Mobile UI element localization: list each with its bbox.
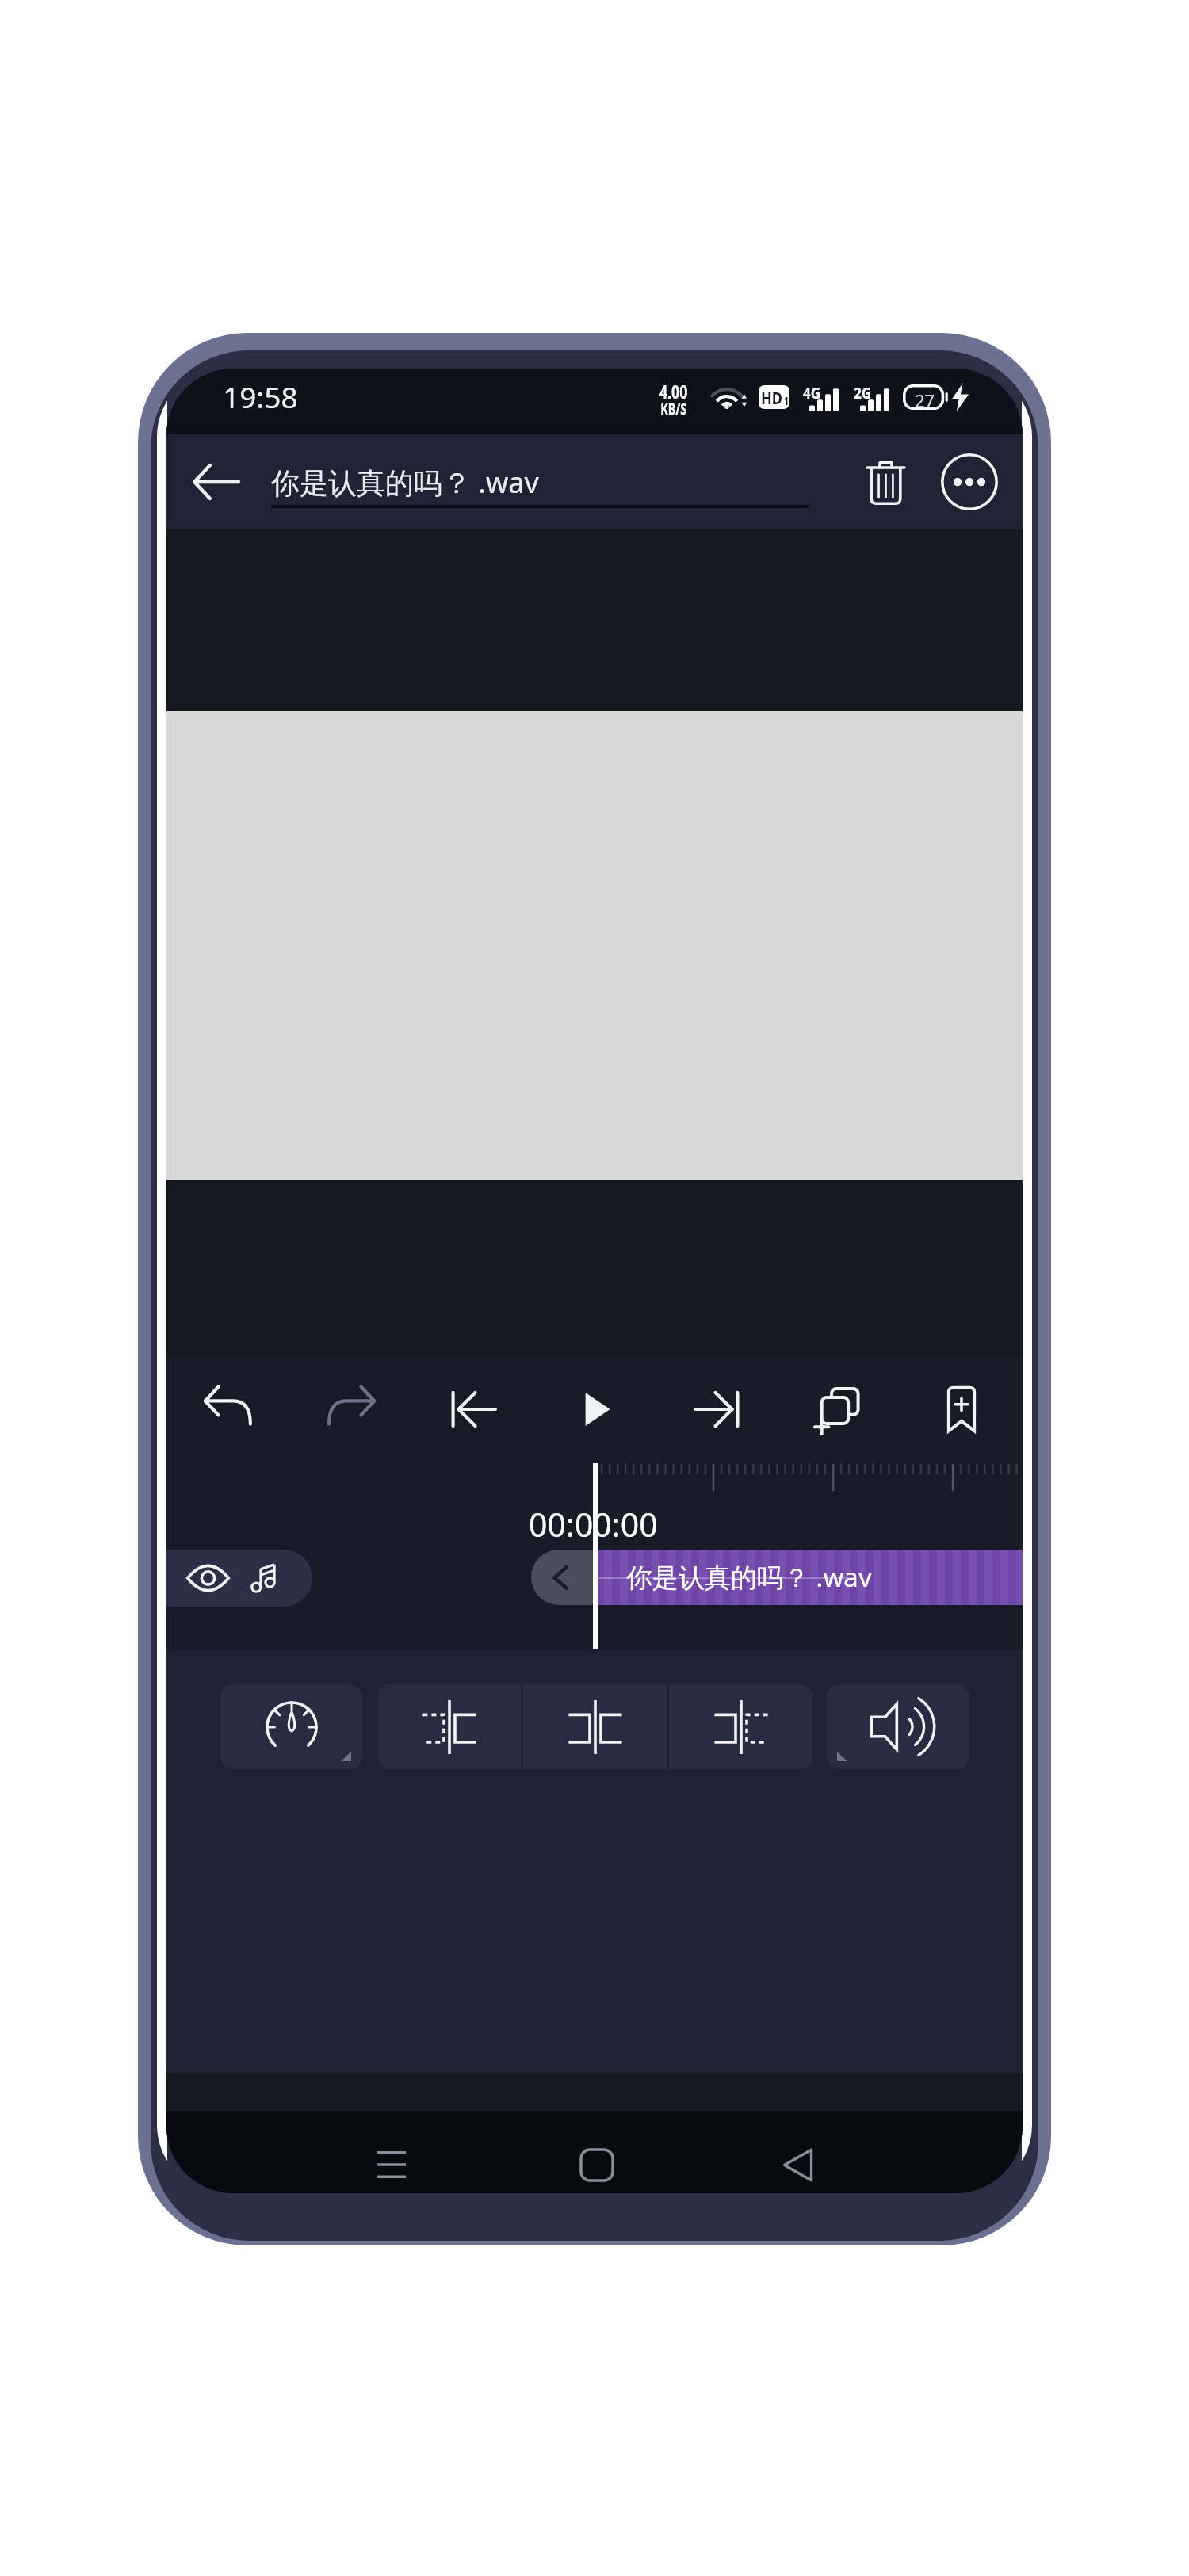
button[interactable]: Speed (220, 1684, 362, 1769)
button[interactable]: Volume (827, 1684, 969, 1769)
button[interactable]: Add marker (900, 1355, 1023, 1464)
button[interactable]: Home (559, 2123, 635, 2193)
staticText: 你是认真的吗？ .wav (271, 463, 539, 502)
button[interactable]: Split (523, 1684, 667, 1769)
button[interactable]: Trim left (378, 1684, 521, 1769)
button[interactable]: Back (759, 2123, 835, 2193)
staticText: 你是认真的吗？ .wav (626, 1559, 872, 1595)
staticText: 4G (803, 382, 821, 404)
button[interactable]: Trim start (531, 1550, 596, 1605)
button[interactable]: Skip to start (412, 1355, 534, 1464)
staticText: 19:58 (223, 376, 298, 416)
button[interactable]: Duplicate (778, 1355, 900, 1464)
button[interactable]: Redo (289, 1355, 412, 1464)
staticText: HD (761, 385, 782, 409)
button[interactable] (166, 1550, 312, 1607)
button[interactable]: Trim right (669, 1684, 812, 1769)
staticText: 4.00 (659, 378, 688, 404)
button[interactable]: Play (534, 1355, 656, 1464)
staticText: 1 (784, 392, 787, 408)
button[interactable]: Delete (848, 445, 923, 519)
button[interactable]: 你是认真的吗？ .wav (596, 1550, 1023, 1605)
staticText: KB/S (661, 399, 687, 420)
staticText: 27 (915, 388, 935, 412)
staticText: 2G (854, 382, 872, 404)
button[interactable]: Skip to end (656, 1355, 778, 1464)
button[interactable]: Undo (166, 1355, 289, 1464)
button[interactable]: Recent apps (353, 2123, 429, 2193)
staticText: 00:00:00 (529, 1502, 658, 1546)
button[interactable]: Back (178, 444, 254, 520)
button[interactable]: More options (935, 447, 1004, 517)
